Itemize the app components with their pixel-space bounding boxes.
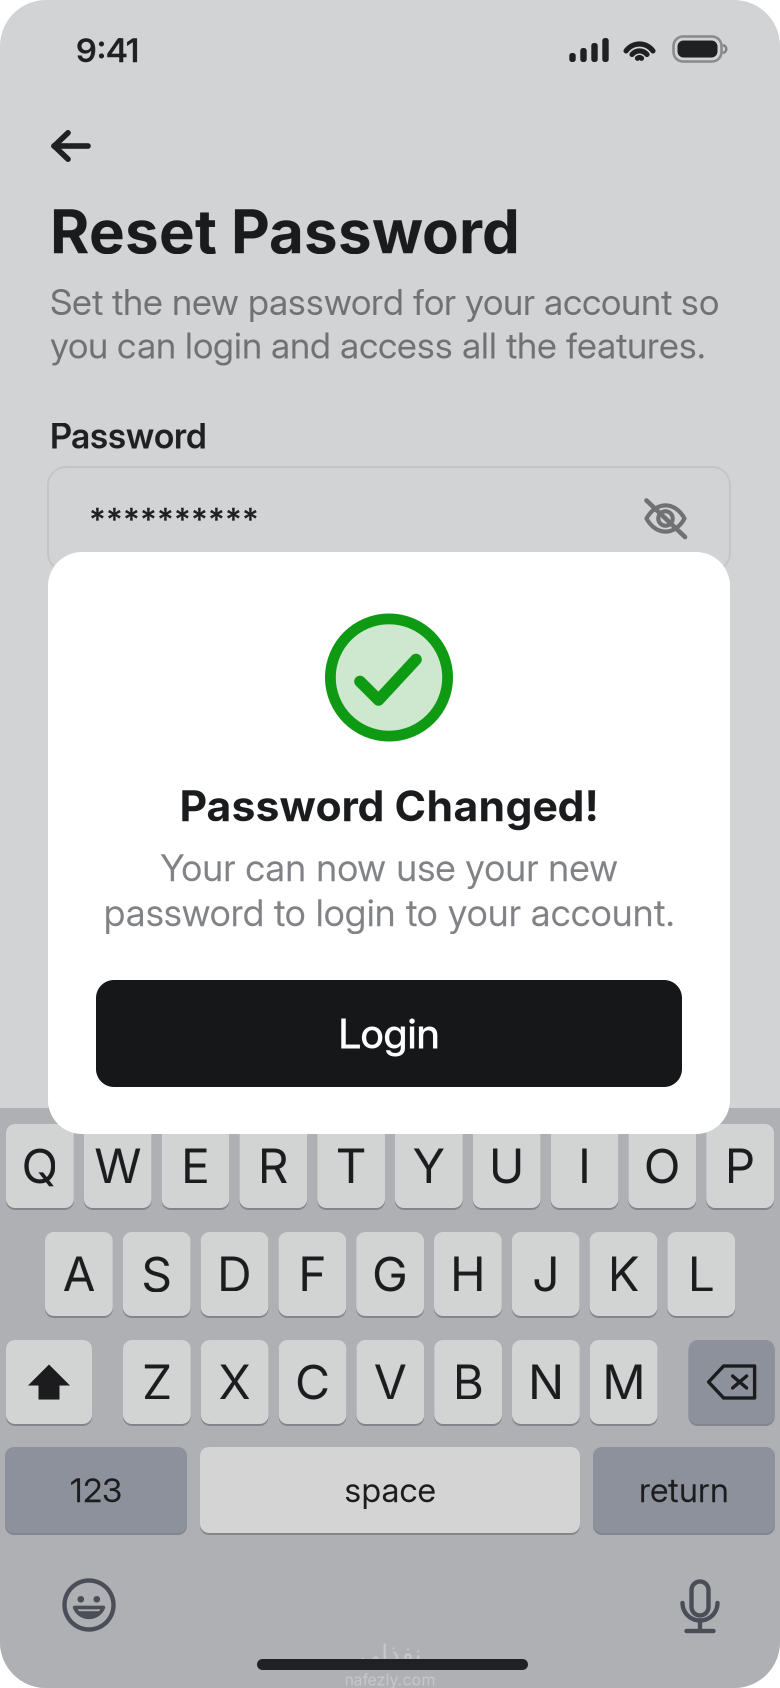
staticText: E	[181, 1137, 210, 1195]
staticText: **********	[89, 500, 259, 538]
staticText: Set the new password for your account so…	[50, 280, 719, 367]
button[interactable]: T	[317, 1124, 385, 1208]
staticText: Your can now use your new password to lo…	[103, 845, 674, 935]
button[interactable]: W	[84, 1124, 152, 1208]
staticText: نفذلي	[359, 1639, 421, 1668]
button[interactable]: Delete	[689, 1340, 775, 1424]
staticText: return	[639, 1470, 729, 1510]
staticText: L	[688, 1245, 715, 1303]
staticText: O	[644, 1137, 681, 1195]
staticText: X	[218, 1353, 251, 1411]
button[interactable]: F	[278, 1232, 346, 1316]
staticText: V	[374, 1353, 407, 1411]
staticText: B	[453, 1353, 484, 1411]
staticText: Q	[21, 1137, 58, 1195]
button[interactable]: R	[239, 1124, 307, 1208]
button[interactable]: K	[590, 1232, 657, 1316]
staticText: S	[141, 1245, 172, 1303]
button[interactable]: M	[590, 1340, 658, 1424]
staticText: W	[94, 1137, 141, 1195]
staticText: I	[578, 1137, 591, 1195]
button[interactable]: Y	[395, 1124, 463, 1208]
staticText: R	[258, 1137, 289, 1195]
staticText: T	[336, 1137, 367, 1195]
button[interactable]: V	[356, 1340, 424, 1424]
staticText: M	[602, 1353, 645, 1411]
staticText: space	[344, 1470, 435, 1510]
button[interactable]: Emoji keyboard	[62, 1578, 116, 1632]
staticText: Login	[338, 1008, 439, 1058]
button[interactable]: Back	[51, 130, 91, 162]
button[interactable]: X	[201, 1340, 269, 1424]
staticText: 9:41	[76, 30, 139, 70]
button[interactable]: O	[628, 1124, 696, 1208]
staticText: nafezly.com	[344, 1670, 435, 1688]
staticText: K	[607, 1245, 639, 1303]
staticText: U	[489, 1137, 525, 1195]
staticText: D	[217, 1245, 252, 1303]
staticText: H	[450, 1245, 486, 1303]
staticText: Z	[142, 1353, 172, 1411]
button[interactable]: J	[512, 1232, 580, 1316]
staticText: F	[298, 1245, 326, 1303]
button[interactable]: U	[473, 1124, 541, 1208]
button[interactable]: Z	[123, 1340, 191, 1424]
staticText: G	[372, 1245, 408, 1303]
staticText: A	[62, 1245, 95, 1303]
button[interactable]: A	[45, 1232, 113, 1316]
button[interactable]: L	[667, 1232, 735, 1316]
button[interactable]: H	[434, 1232, 502, 1316]
button[interactable]: return	[593, 1447, 775, 1533]
button[interactable]: Q	[6, 1124, 74, 1208]
button[interactable]: S	[123, 1232, 191, 1316]
staticText: Y	[412, 1137, 445, 1195]
staticText: P	[725, 1137, 756, 1195]
button[interactable]: I	[551, 1124, 618, 1208]
staticText: Password Changed!	[179, 780, 598, 832]
staticText: N	[528, 1353, 564, 1411]
button[interactable]: E	[162, 1124, 229, 1208]
button[interactable]: space	[200, 1447, 580, 1533]
button[interactable]: N	[512, 1340, 580, 1424]
staticText: Reset Password	[50, 195, 520, 268]
button[interactable]: Login	[96, 980, 682, 1087]
button[interactable]: Shift	[6, 1340, 92, 1424]
button[interactable]: D	[201, 1232, 268, 1316]
button[interactable]: G	[356, 1232, 424, 1316]
button[interactable]: Dictation	[681, 1577, 719, 1634]
staticText: 123	[70, 1470, 122, 1510]
staticText: J	[532, 1245, 559, 1303]
button[interactable]: B	[434, 1340, 502, 1424]
staticText: C	[295, 1353, 330, 1411]
button[interactable]: P	[706, 1124, 774, 1208]
button[interactable]: C	[279, 1340, 346, 1424]
staticText: Password	[50, 415, 207, 457]
button[interactable]: 123	[5, 1447, 187, 1533]
